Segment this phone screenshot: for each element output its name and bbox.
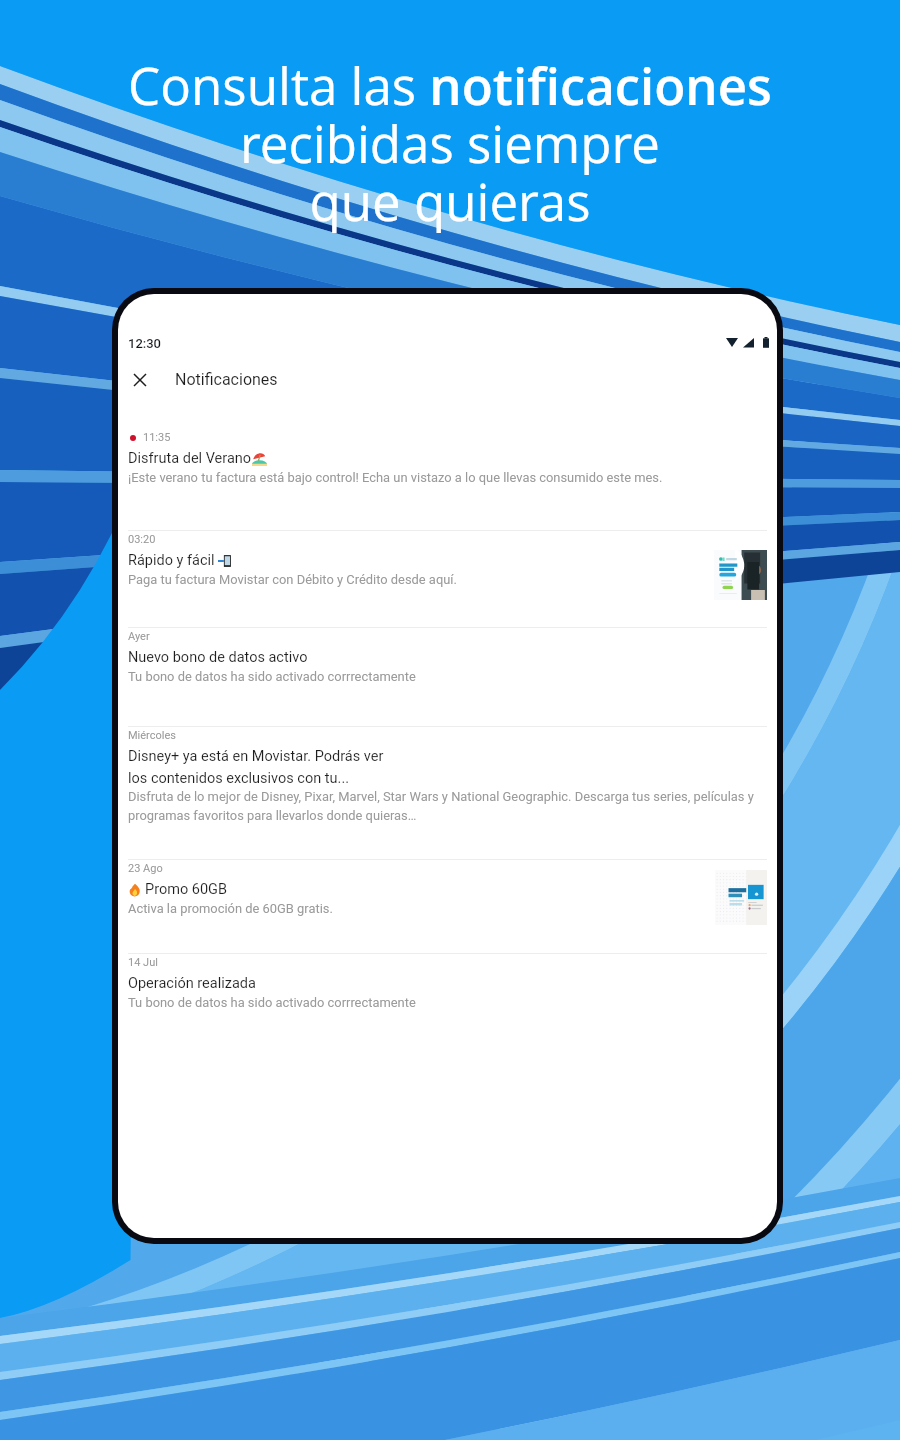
staticText: Disfruta del Verano (128, 450, 252, 467)
staticText: Promo 60GB (145, 881, 227, 898)
staticText: Nuevo bono de datos activo (128, 649, 308, 666)
staticText: Operación realizada (128, 975, 256, 992)
staticText: Disfruta de lo mejor de Disney, Pixar, M… (128, 789, 767, 823)
staticText: Miércoles (128, 729, 176, 742)
staticText: 03:20 (128, 533, 156, 546)
staticText: Ayer (128, 630, 150, 643)
button[interactable]: 11:35 (118, 429, 777, 531)
staticText: Tu bono de datos ha sido activado corrre… (128, 995, 416, 1010)
button[interactable]: 23 Ago (118, 860, 777, 954)
staticText: 11:35 (143, 431, 171, 444)
button[interactable]: Cerrar (118, 358, 162, 402)
staticText: Activa la promoción de 60GB gratis. (128, 901, 333, 916)
staticText: ¡Este verano tu factura está bajo contro… (128, 470, 663, 485)
button[interactable]: 14 Jul (118, 954, 777, 1014)
button[interactable]: Miércoles (118, 727, 777, 860)
button[interactable]: 03:20 (118, 531, 777, 628)
staticText: 12:30 (128, 336, 162, 351)
staticText: 23 Ago (128, 862, 163, 875)
staticText: Rápido y fácil (128, 552, 215, 569)
staticText: Paga tu factura Movistar con Débito y Cr… (128, 572, 457, 587)
staticText: Notificaciones (175, 370, 278, 389)
staticText: Consulta las notificaciones recibidas si… (128, 50, 772, 235)
staticText: Tu bono de datos ha sido activado corrre… (128, 669, 416, 684)
button[interactable]: Ayer (118, 628, 777, 727)
staticText: 14 Jul (128, 956, 158, 969)
staticText: Disney+ ya está en Movistar. Podrás ver … (128, 748, 384, 786)
